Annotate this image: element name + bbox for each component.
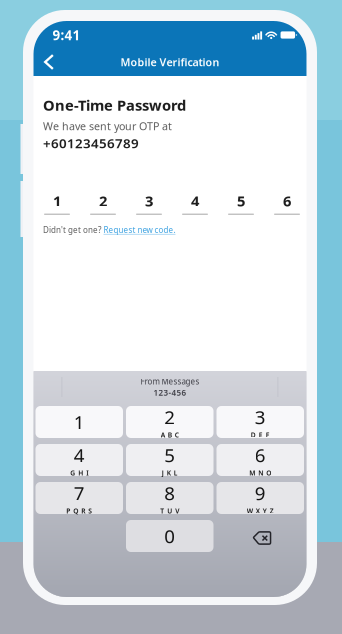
staticText: MNO	[249, 468, 271, 477]
button[interactable]: Back	[37, 50, 61, 74]
staticText: GHI	[70, 468, 88, 477]
staticText: 9:41	[52, 26, 80, 44]
button[interactable]: Request new code.	[103, 225, 175, 235]
button[interactable]: 4	[35, 444, 123, 476]
staticText: 6	[283, 191, 291, 210]
staticText: 5	[237, 191, 245, 210]
staticText: Didn't get one?	[43, 225, 101, 235]
button[interactable]: Delete	[216, 520, 304, 552]
button[interactable]: 0	[126, 520, 213, 552]
staticText: 3	[255, 405, 266, 429]
button[interactable]: 3	[216, 406, 304, 438]
staticText: JKL	[162, 468, 178, 477]
staticText: From Messages	[140, 376, 199, 387]
button[interactable]: 7	[35, 482, 123, 514]
staticText: 5	[164, 443, 175, 467]
staticText: 2	[164, 405, 175, 429]
staticText: TUV	[160, 506, 179, 515]
staticText: +60123456789	[43, 134, 139, 152]
button[interactable]: 1	[44, 191, 70, 215]
button[interactable]: 4	[182, 191, 208, 215]
staticText: 8	[164, 481, 175, 505]
staticText: One-Time Password	[43, 95, 186, 115]
staticText: 1	[53, 191, 61, 210]
staticText: 3	[145, 191, 153, 210]
staticText: Request new code.	[103, 225, 175, 235]
button[interactable]: 6	[216, 444, 304, 476]
staticText: WXYZ	[247, 506, 274, 515]
staticText: 4	[191, 191, 199, 210]
staticText: 7	[74, 481, 85, 505]
staticText: 1	[74, 410, 85, 434]
staticText: 4	[74, 443, 85, 467]
button[interactable]: 2	[90, 191, 116, 215]
staticText: Mobile Verification	[120, 55, 219, 69]
staticText: 2	[99, 191, 107, 210]
staticText: ABC	[161, 430, 179, 439]
button[interactable]: 5	[126, 444, 213, 476]
staticText: 123-456	[153, 387, 186, 398]
staticText: PQRS	[66, 506, 92, 515]
button[interactable]: 3	[136, 191, 162, 215]
staticText: 0	[164, 524, 175, 548]
staticText: 9	[255, 481, 266, 505]
staticText: DEF	[251, 430, 270, 439]
button[interactable]: 6	[274, 191, 300, 215]
button[interactable]: 1	[35, 406, 123, 438]
staticText: 6	[255, 443, 266, 467]
staticText: We have sent your OTP at	[43, 119, 172, 133]
button[interactable]: 8	[126, 482, 213, 514]
button[interactable]: 9	[216, 482, 304, 514]
button[interactable]: 2	[126, 406, 213, 438]
button[interactable]: 5	[228, 191, 254, 215]
